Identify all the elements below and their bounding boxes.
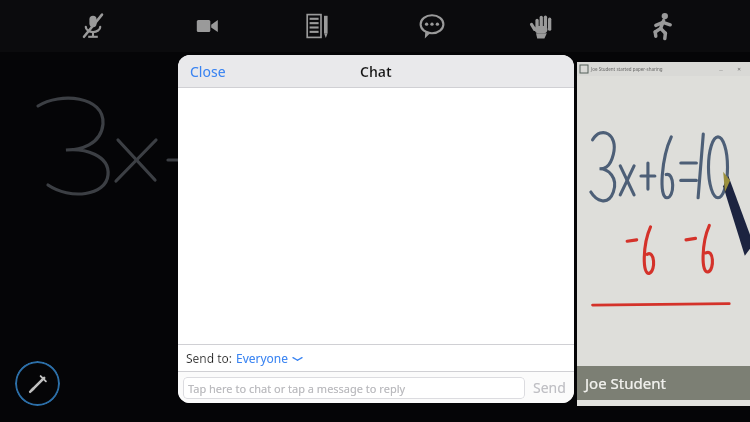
staticText: Joe Student — [585, 373, 666, 393]
staticText: Everyone — [236, 350, 289, 366]
staticText: Send to: — [186, 350, 236, 366]
staticText: Tap here to chat or tap a message to rep… — [188, 381, 406, 396]
staticText: — — [719, 67, 723, 72]
button[interactable]: Leave — [637, 0, 689, 52]
button[interactable]: Tap here to chat or tap a message to rep… — [183, 377, 525, 399]
button[interactable]: Everyone — [236, 350, 300, 366]
button[interactable]: Send — [525, 378, 574, 397]
button[interactable]: Notes — [292, 0, 344, 52]
staticText: Close — [190, 62, 226, 81]
staticText: ✕ — [737, 66, 742, 72]
button[interactable]: Mute — [67, 0, 119, 52]
button[interactable]: Camera — [181, 0, 233, 52]
staticText: Send — [533, 378, 566, 397]
staticText: Chat — [360, 62, 392, 81]
button[interactable]: Draw — [15, 361, 60, 406]
staticText: Joe Student started paper-sharing — [591, 66, 725, 72]
button[interactable]: Close — [184, 58, 232, 85]
button[interactable]: Chat — [406, 0, 458, 52]
button[interactable]: Raise hand — [516, 0, 568, 52]
